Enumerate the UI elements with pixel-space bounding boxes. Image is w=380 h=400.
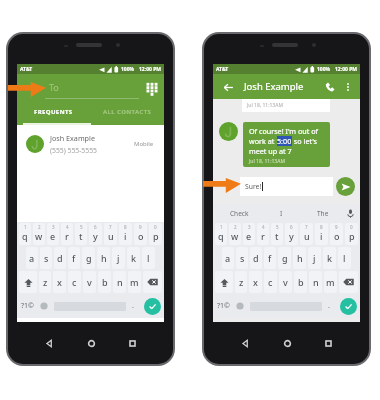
button[interactable]: c <box>68 271 81 293</box>
button[interactable]: s <box>40 247 52 269</box>
button[interactable]: a <box>26 247 38 269</box>
button[interactable]: Home <box>278 335 296 351</box>
button[interactable]: Call <box>323 80 336 93</box>
button[interactable]: Recents <box>319 335 337 351</box>
button[interactable]: 1 <box>215 223 227 245</box>
button[interactable]: Back <box>40 335 58 351</box>
staticText: l <box>343 252 346 264</box>
button[interactable]: g <box>278 247 291 269</box>
button[interactable]: Check <box>219 204 260 222</box>
button[interactable]: 6 <box>285 223 298 245</box>
staticText: t <box>275 230 279 242</box>
button[interactable]: 5 <box>271 223 283 245</box>
button[interactable]: ?1© <box>213 294 233 318</box>
button[interactable]: j <box>112 247 125 269</box>
button[interactable]: Back <box>236 335 254 351</box>
button[interactable]: 9 <box>134 223 147 245</box>
button[interactable]: n <box>309 271 322 293</box>
button[interactable]: l <box>338 247 351 269</box>
staticText: 8 <box>124 224 127 230</box>
button[interactable]: m <box>128 271 141 293</box>
button[interactable]: k <box>323 247 336 269</box>
staticText: 6 <box>290 224 293 230</box>
button[interactable]: 9 <box>330 223 343 245</box>
button[interactable]: Josh Example <box>17 125 164 163</box>
button[interactable]: I <box>260 204 302 222</box>
button[interactable]: 6 <box>89 223 102 245</box>
button[interactable]: Enter <box>140 294 164 318</box>
button[interactable]: 2 <box>33 223 45 245</box>
button[interactable]: 8 <box>315 223 328 245</box>
button[interactable]: 7 <box>300 223 313 245</box>
button[interactable]: Voice input <box>344 207 356 219</box>
button[interactable]: h <box>97 247 110 269</box>
button[interactable]: x <box>53 271 66 293</box>
button[interactable]: The <box>302 204 344 222</box>
button[interactable]: Shift <box>19 271 37 293</box>
button[interactable]: s <box>236 247 248 269</box>
button[interactable]: Sure! <box>240 177 333 196</box>
button[interactable]: a <box>222 247 234 269</box>
button[interactable]: 4 <box>61 223 73 245</box>
staticText: c <box>72 276 77 288</box>
staticText: To <box>49 81 59 93</box>
button[interactable]: Emoji <box>233 294 247 318</box>
button[interactable]: d <box>250 247 262 269</box>
staticText: I <box>280 209 283 218</box>
button[interactable]: 0 <box>345 223 358 245</box>
button[interactable]: k <box>127 247 140 269</box>
button[interactable]: g <box>82 247 95 269</box>
button[interactable]: Of course! I'm out of <box>243 122 330 167</box>
button[interactable]: d <box>54 247 66 269</box>
button[interactable]: 2 <box>229 223 241 245</box>
button[interactable]: Dial pad <box>146 82 158 96</box>
button[interactable]: c <box>264 271 277 293</box>
button[interactable]: 4 <box>257 223 269 245</box>
staticText: u <box>108 230 114 242</box>
button[interactable]: Emoji <box>37 294 51 318</box>
button[interactable]: To <box>49 74 140 103</box>
button[interactable]: . <box>322 294 336 318</box>
button[interactable]: ?1© <box>17 294 37 318</box>
button[interactable]: v <box>83 271 96 293</box>
button[interactable]: Back <box>221 80 235 94</box>
button[interactable]: Backspace <box>143 271 162 293</box>
staticText: a <box>29 252 35 264</box>
button[interactable]: 8 <box>119 223 132 245</box>
staticText: 1 <box>24 224 27 230</box>
button[interactable]: 5 <box>75 223 87 245</box>
button[interactable]: f <box>264 247 276 269</box>
button[interactable]: j <box>308 247 321 269</box>
staticText: 4 <box>66 224 69 230</box>
button[interactable]: 7 <box>104 223 117 245</box>
button[interactable]: 3 <box>47 223 59 245</box>
button[interactable]: 3 <box>243 223 255 245</box>
button[interactable]: b <box>98 271 111 293</box>
button[interactable]: Recents <box>123 335 141 351</box>
button[interactable]: 0 <box>149 223 162 245</box>
button[interactable]: ALL CONTACTS <box>90 103 164 125</box>
button[interactable]: h <box>293 247 306 269</box>
button[interactable]: Shift <box>215 271 233 293</box>
button[interactable]: x <box>249 271 262 293</box>
button[interactable]: FREQUENTS <box>17 103 90 125</box>
button[interactable]: Send <box>336 177 355 196</box>
button[interactable]: l <box>142 247 155 269</box>
button[interactable]: b <box>294 271 307 293</box>
button[interactable]: z <box>39 271 51 293</box>
button[interactable]: f <box>68 247 80 269</box>
button[interactable]: More options <box>342 81 354 93</box>
button[interactable]: z <box>235 271 247 293</box>
button[interactable]: Home <box>82 335 100 351</box>
staticText: Jul 18, 11:13AM <box>247 102 283 109</box>
button[interactable]: . <box>126 294 140 318</box>
button[interactable]: Enter <box>336 294 360 318</box>
button[interactable]: 1 <box>19 223 31 245</box>
button[interactable]: v <box>279 271 292 293</box>
staticText: g <box>86 252 92 264</box>
button[interactable]: m <box>324 271 337 293</box>
button[interactable]: n <box>113 271 126 293</box>
button[interactable]: Backspace <box>339 271 358 293</box>
